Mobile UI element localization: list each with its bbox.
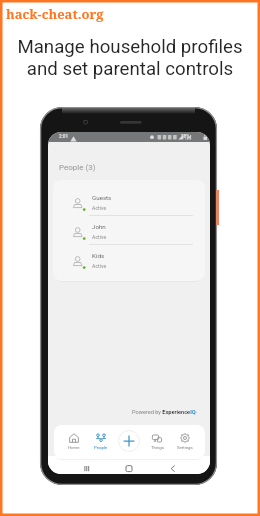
staticText: Active	[92, 234, 107, 240]
button[interactable]: People	[87, 425, 115, 459]
staticText: Kids	[92, 252, 105, 259]
button[interactable]: Things	[143, 425, 171, 459]
button[interactable]: Settings	[171, 425, 199, 459]
staticText: hack-cheat.org	[6, 5, 104, 23]
staticText: Manage household profiles and set parent…	[17, 36, 243, 79]
staticText: Home	[68, 445, 80, 450]
staticText: 2:01	[59, 134, 69, 140]
staticText: Powered by ExperienceIQ™	[132, 409, 198, 416]
button[interactable]: Add	[118, 430, 140, 452]
staticText: John	[92, 223, 106, 230]
staticText: People (3)	[59, 163, 96, 172]
staticText: Active	[92, 205, 107, 211]
staticText: 38%	[181, 134, 190, 140]
button[interactable]: John	[53, 216, 205, 245]
button[interactable]: Home	[60, 425, 87, 459]
staticText: Active	[92, 263, 107, 269]
staticText: People	[94, 445, 108, 450]
staticText: Guests	[92, 194, 112, 201]
staticText: Settings	[177, 445, 193, 450]
staticText: Things	[151, 445, 164, 450]
button[interactable]: Kids	[53, 245, 205, 274]
button[interactable]: Guests	[53, 187, 205, 216]
